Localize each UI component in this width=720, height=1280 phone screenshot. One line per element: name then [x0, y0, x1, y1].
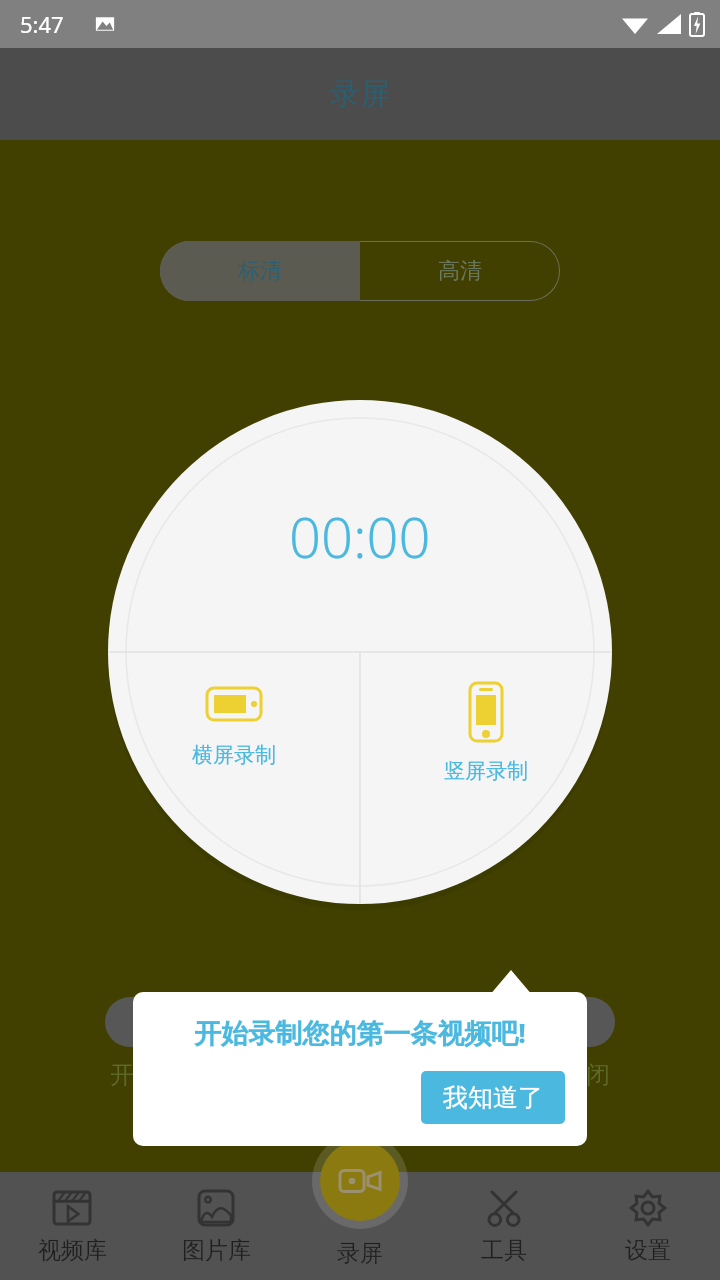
staticText: 录屏	[337, 1239, 383, 1268]
button[interactable]: 视频库	[0, 1172, 144, 1280]
staticText: 闭	[586, 1060, 610, 1090]
button[interactable]	[105, 997, 615, 1047]
staticText: 5:47	[20, 9, 64, 39]
button[interactable]: 横屏录制	[108, 680, 360, 768]
button[interactable]: 图片库	[144, 1172, 288, 1280]
staticText: 高清	[438, 257, 482, 285]
staticText: 横屏录制	[192, 742, 276, 768]
staticText: 开始录制您的第一条视频吧!	[155, 1014, 565, 1051]
staticText: 录屏	[330, 75, 390, 113]
button[interactable]: 高清	[360, 241, 560, 301]
staticText: 竖屏录制	[444, 758, 528, 784]
button[interactable]: 工具	[432, 1172, 576, 1280]
staticText: 工具	[481, 1236, 527, 1265]
staticText: 图片库	[182, 1236, 251, 1265]
staticText: 设置	[625, 1236, 671, 1265]
button[interactable]: 设置	[576, 1172, 720, 1280]
staticText: 开	[110, 1060, 134, 1090]
staticText: 00:00	[289, 498, 431, 574]
staticText: 我知道了	[443, 1082, 543, 1113]
button[interactable]: 标清	[160, 241, 360, 301]
staticText: 标清	[238, 257, 282, 285]
button[interactable]: Record screen	[320, 1141, 400, 1221]
button[interactable]: 录屏	[288, 1172, 432, 1280]
button[interactable]: 竖屏录制	[360, 680, 612, 784]
staticText: 视频库	[38, 1236, 107, 1265]
button[interactable]: 我知道了	[421, 1071, 565, 1124]
